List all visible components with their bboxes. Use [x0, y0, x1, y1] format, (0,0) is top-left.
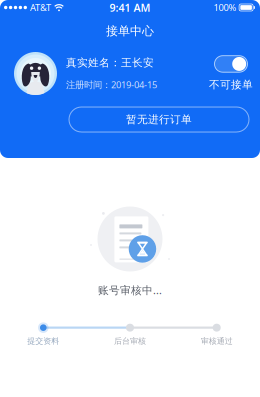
staticText: 暂无进行订单 [126, 113, 192, 126]
button[interactable]: 接单中心 [0, 20, 260, 42]
staticText: 不可接单 [209, 78, 253, 91]
staticText: AT&T [30, 1, 51, 14]
staticText: 审核通过 [201, 336, 233, 346]
staticText: 提交资料 [27, 336, 59, 346]
staticText: 真实姓名：王长安 [66, 56, 154, 69]
button[interactable]: 不可接单 [209, 56, 253, 91]
staticText: 后台审核 [114, 336, 146, 346]
staticText: 9:41 AM [109, 0, 150, 15]
staticText: 注册时间：2019-04-15 [66, 78, 157, 91]
staticText: 100% [213, 1, 236, 14]
staticText: 账号审核中... [98, 283, 162, 297]
staticText: 接单中心 [106, 24, 154, 38]
button[interactable]: 暂无进行订单 [69, 107, 249, 132]
